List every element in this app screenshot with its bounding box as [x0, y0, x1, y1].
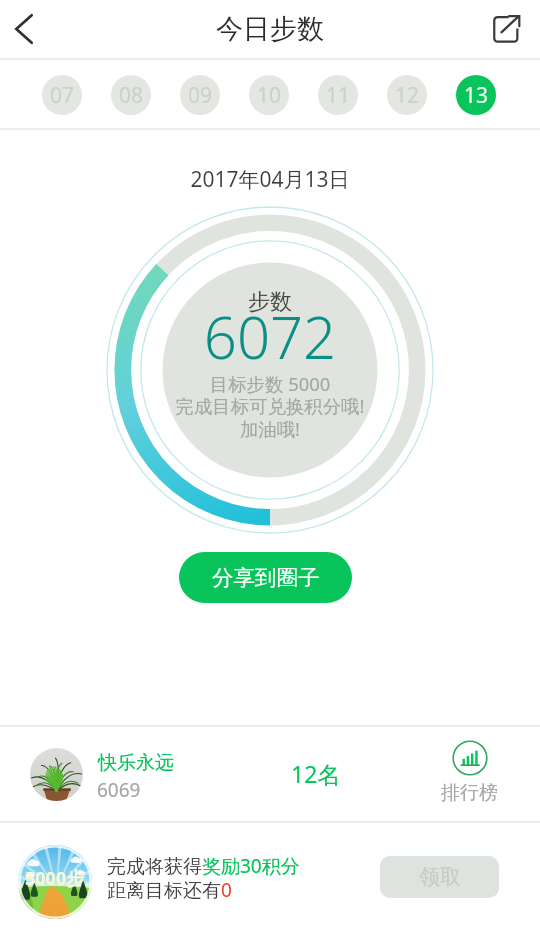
button[interactable]: 07 — [42, 75, 82, 115]
button[interactable]: 10 — [249, 75, 289, 115]
staticText: 领取 — [419, 864, 461, 890]
staticText: 08 — [119, 81, 144, 110]
button[interactable]: 快乐永远 — [0, 724, 540, 824]
staticText: 目标步数 5000 完成目标可兑换积分哦! 加油哦! — [105, 371, 435, 442]
staticText: 完成将获得奖励30积分 — [107, 853, 300, 879]
staticText: 09 — [188, 81, 213, 110]
staticText: 12 — [395, 81, 420, 110]
button[interactable]: 排行榜 — [430, 734, 508, 814]
button[interactable]: Share — [480, 0, 540, 58]
staticText: 今日步数 — [216, 12, 324, 46]
staticText: 10 — [257, 81, 282, 110]
staticText: 11 — [326, 81, 351, 110]
staticText: 步数 — [105, 288, 435, 316]
button[interactable]: 领取 — [380, 856, 499, 898]
staticText: 6072 — [105, 297, 435, 376]
staticText: 排行榜 — [441, 781, 498, 805]
staticText: 距离目标还有0 — [107, 877, 232, 903]
staticText: 12名 — [291, 758, 341, 789]
staticText: 6069 — [97, 777, 141, 803]
staticText: 分享到圈子 — [212, 564, 320, 591]
staticText: 5000步 — [25, 866, 85, 891]
button[interactable]: Back — [0, 0, 50, 58]
button[interactable]: 13 — [456, 75, 496, 115]
staticText: 2017年04月13日 — [0, 165, 540, 194]
staticText: 07 — [50, 81, 75, 110]
button[interactable]: 09 — [180, 75, 220, 115]
button[interactable]: 分享到圈子 — [179, 552, 352, 603]
staticText: 13 — [464, 81, 489, 110]
staticText: 快乐永远 — [98, 751, 174, 775]
button[interactable]: 11 — [318, 75, 358, 115]
button[interactable]: 08 — [111, 75, 151, 115]
button[interactable]: 12 — [387, 75, 427, 115]
